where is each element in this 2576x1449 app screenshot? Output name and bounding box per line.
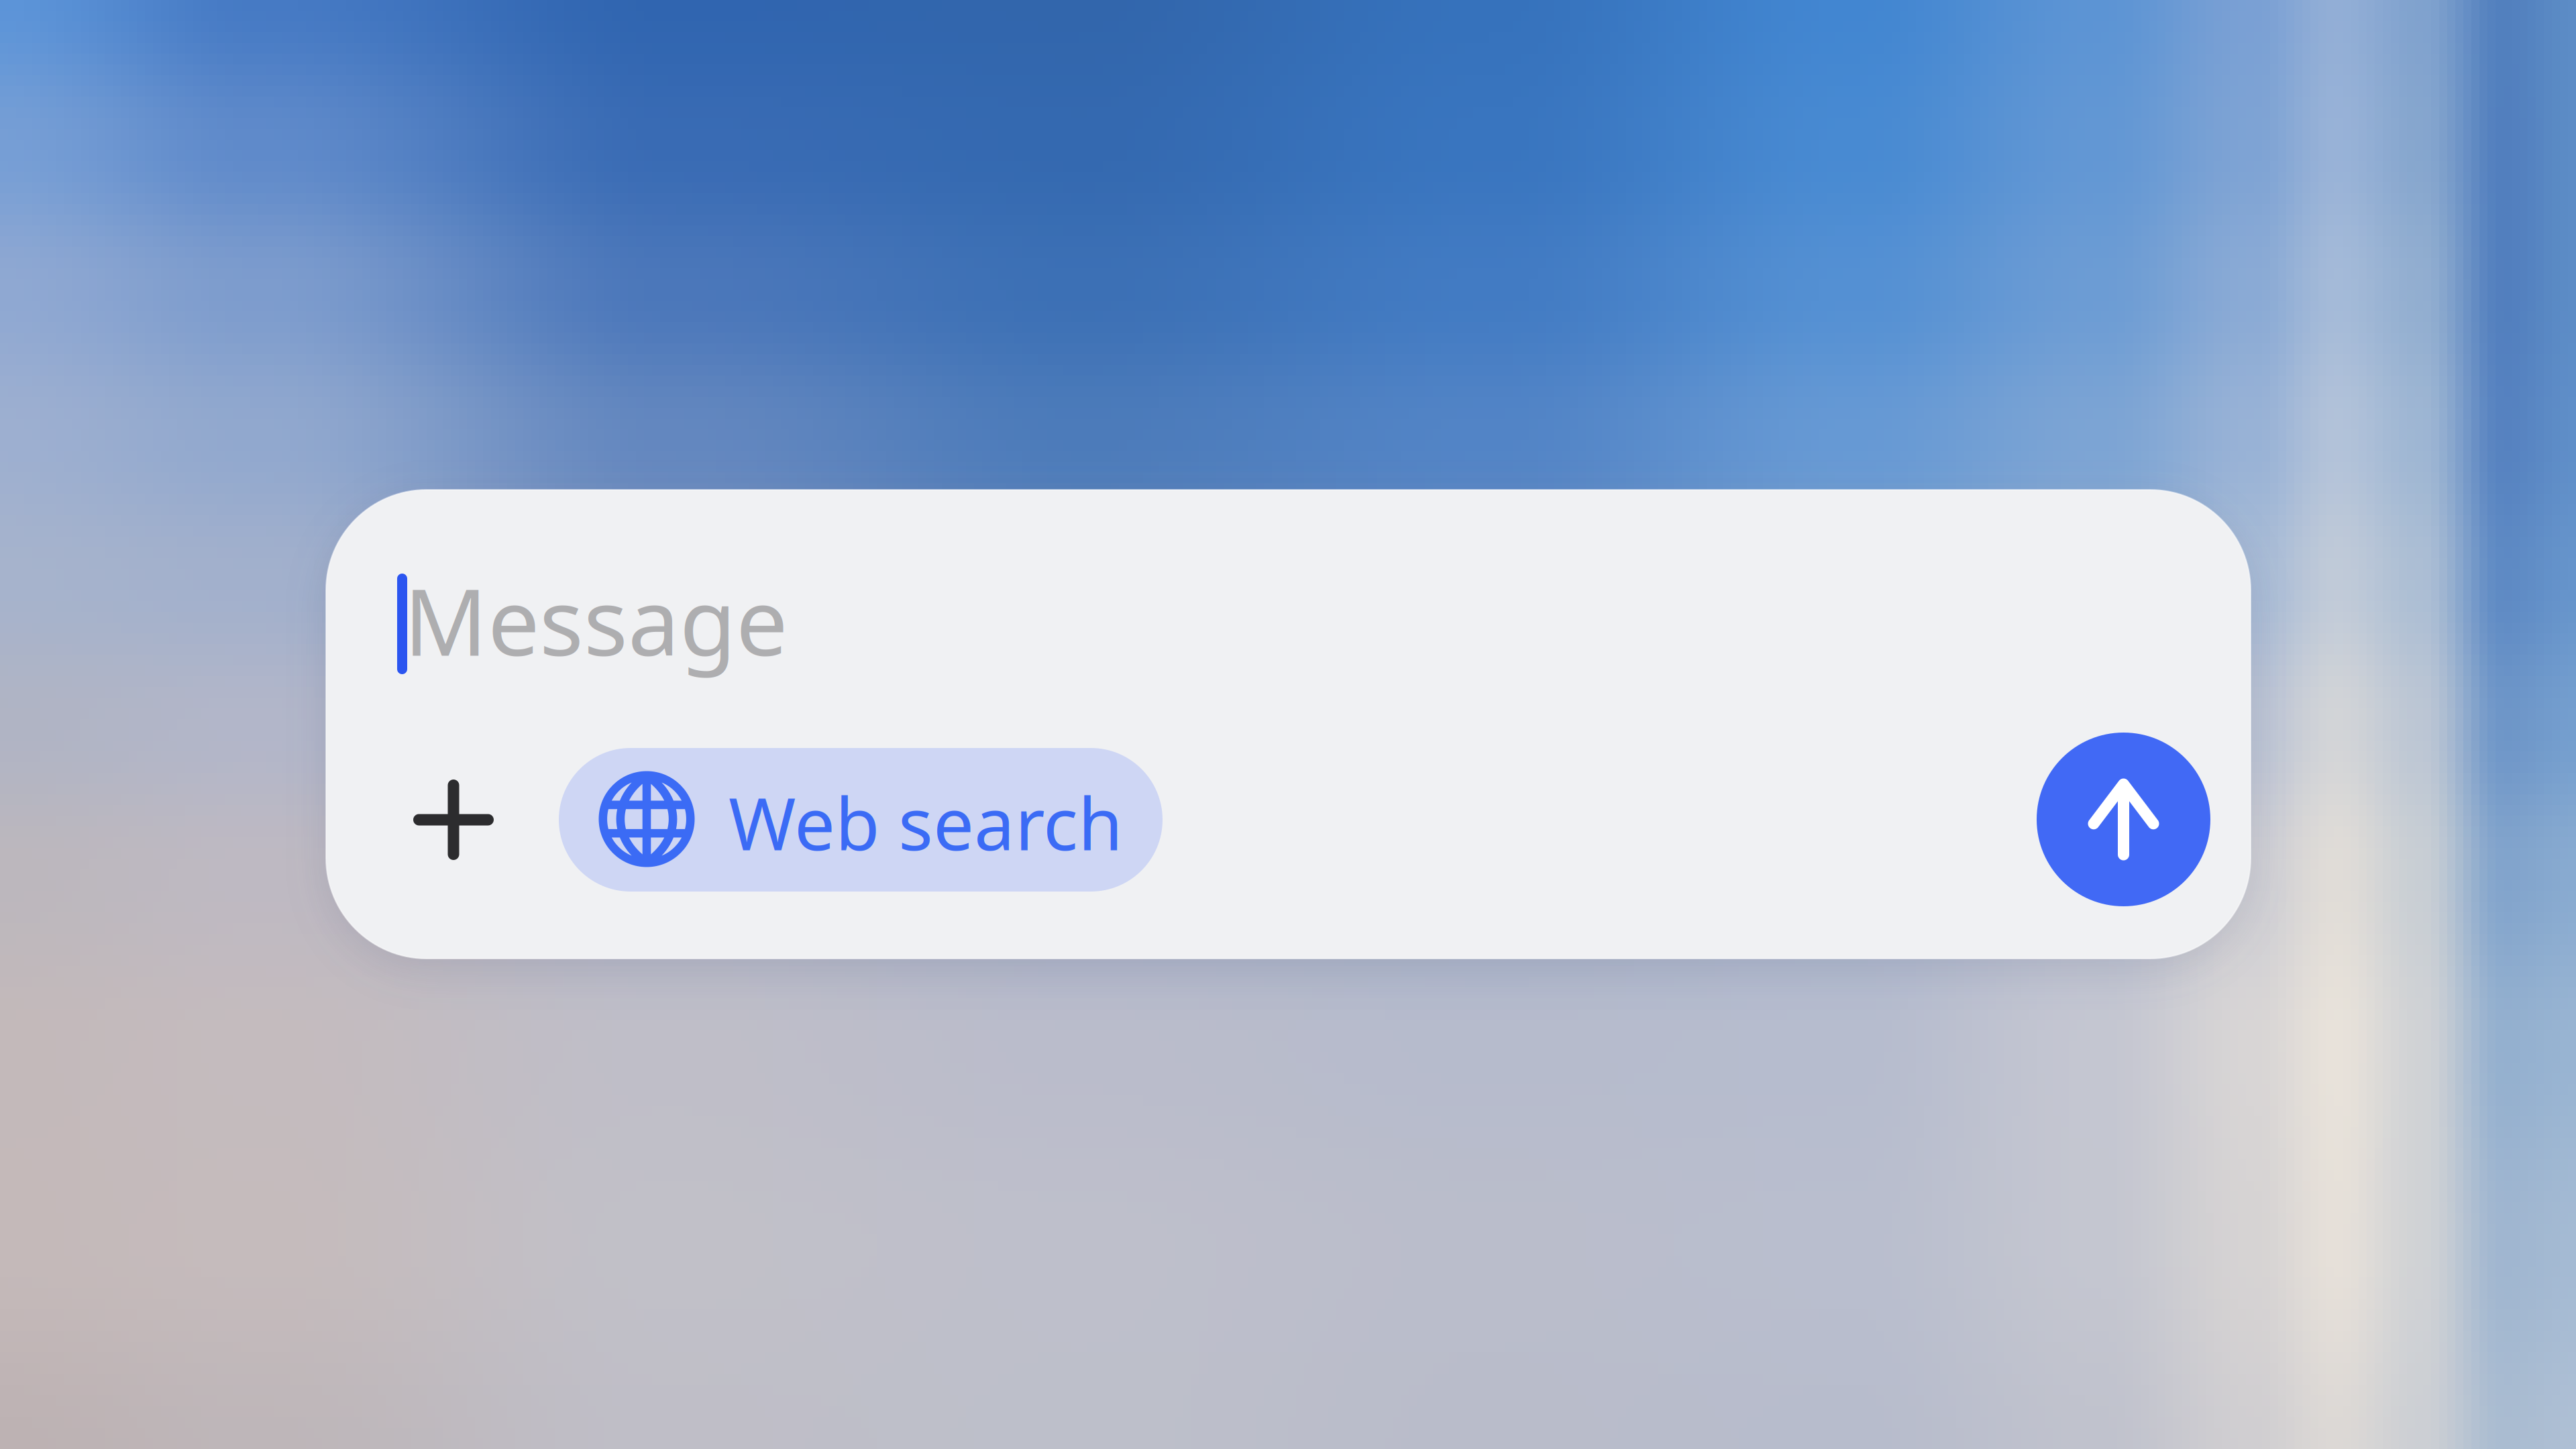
button[interactable]: Add attachment (386, 748, 521, 892)
button[interactable]: Send (2037, 733, 2210, 906)
button[interactable]: Web search (559, 748, 1163, 892)
staticText: Message (404, 559, 788, 681)
staticText: Web search (729, 774, 1123, 870)
